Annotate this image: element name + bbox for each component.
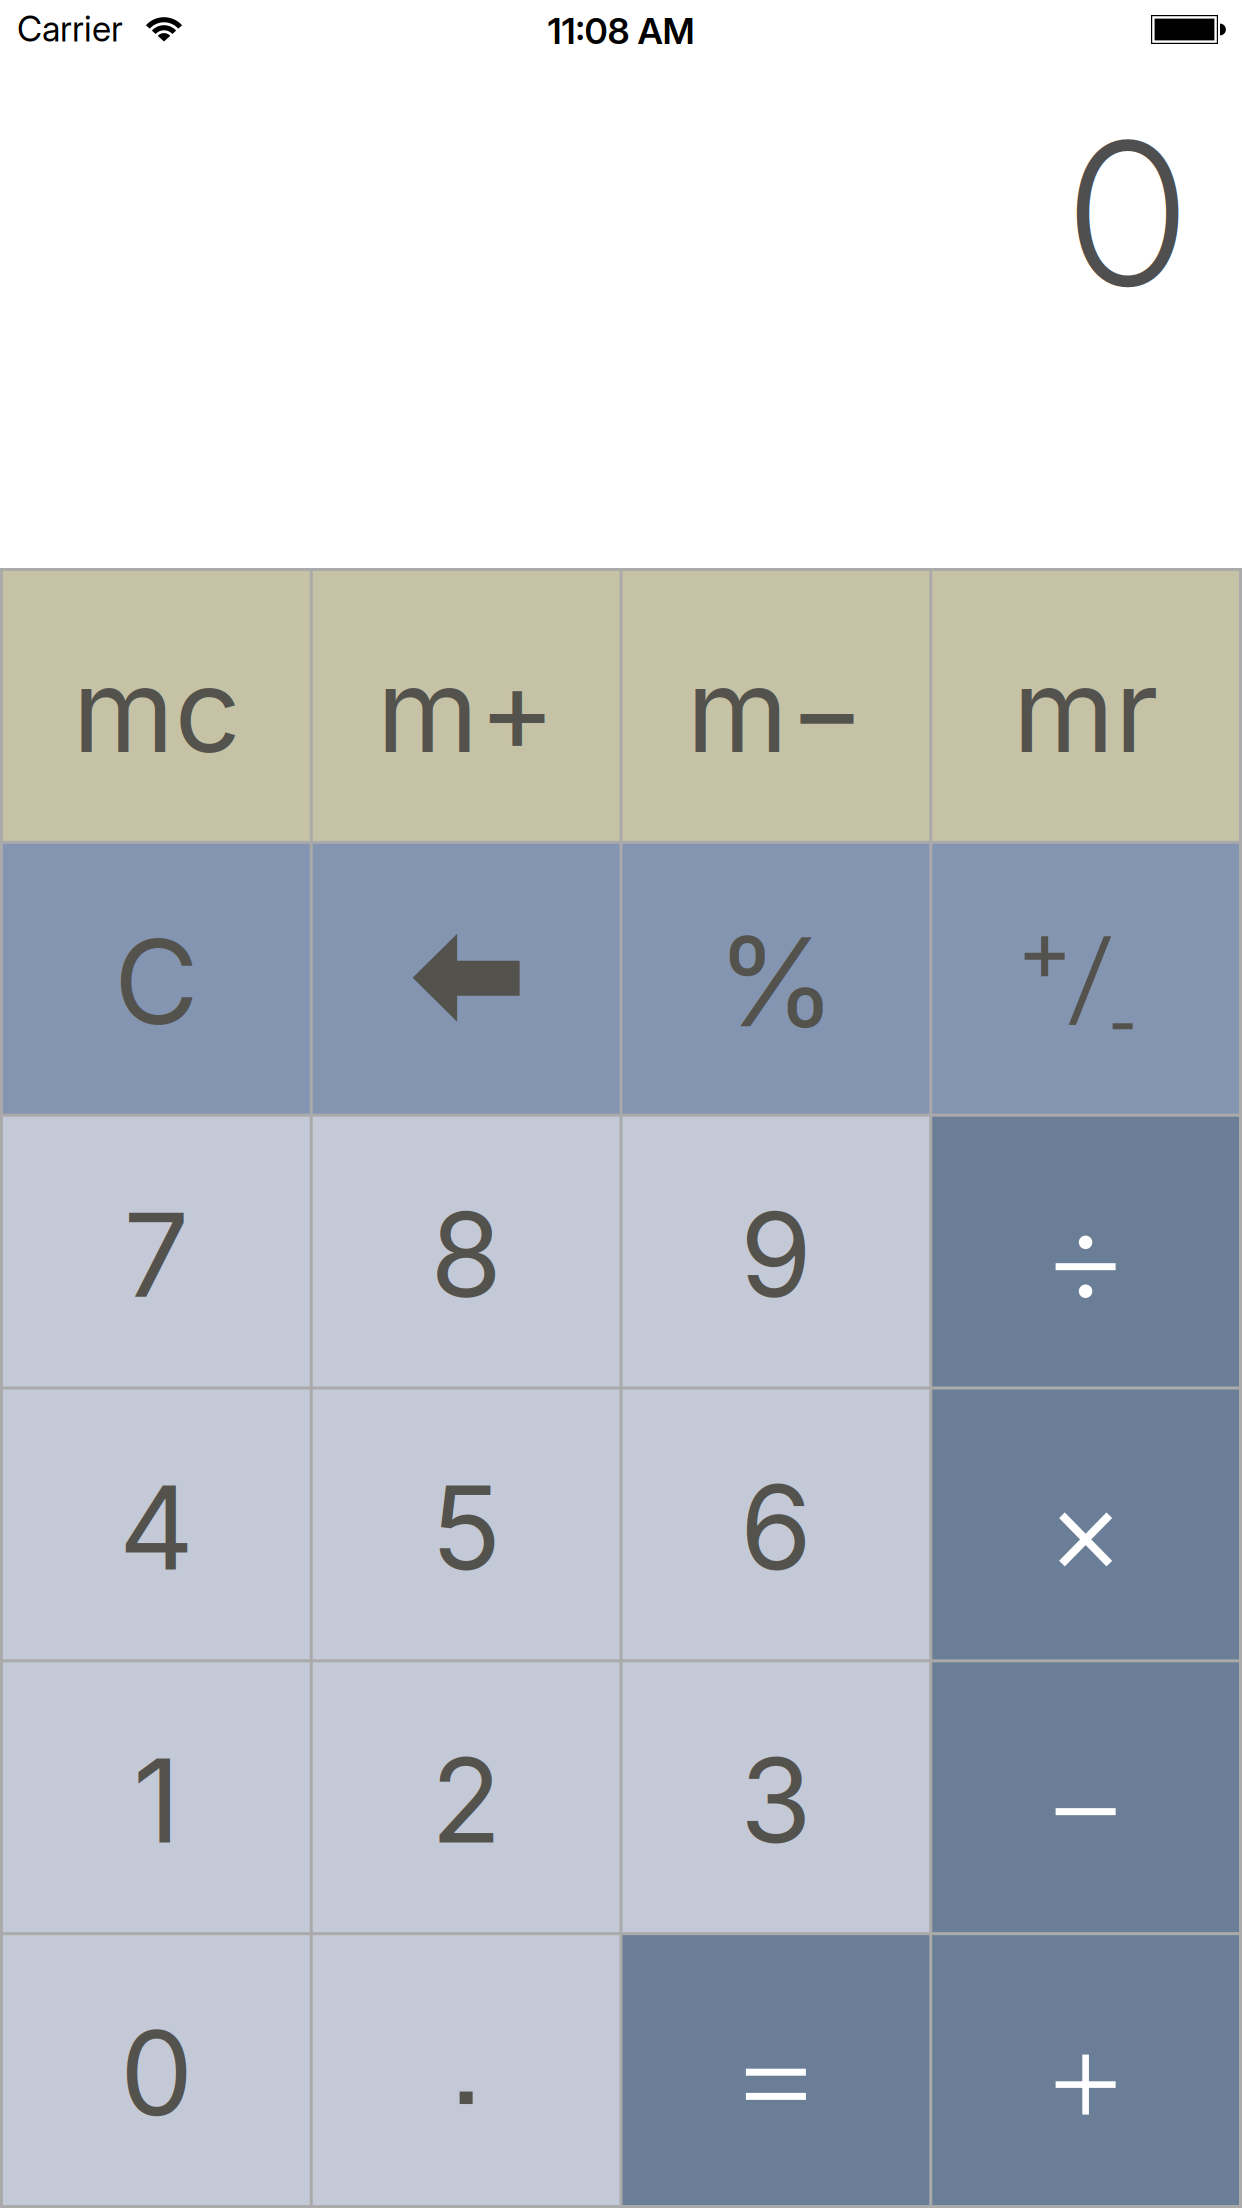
button[interactable]: % [622, 844, 929, 1114]
staticText: 0 [120, 2003, 193, 2143]
staticText: 11:08 AM [547, 9, 694, 53]
button[interactable]: Divide [932, 1117, 1239, 1386]
button[interactable]: 0 [3, 1935, 310, 2205]
staticText: 8 [430, 1184, 502, 1325]
button[interactable]: Plus/Minus [932, 844, 1239, 1114]
button[interactable]: Decimal point [313, 1935, 620, 2205]
button[interactable]: mr [932, 571, 1239, 841]
staticText: mc [72, 640, 240, 780]
staticText: 1 [133, 1730, 180, 1870]
staticText: % [716, 907, 836, 1056]
staticText: Carrier [17, 8, 123, 50]
button[interactable]: Backspace [313, 844, 620, 1114]
staticText: 3 [740, 1730, 812, 1870]
button[interactable]: m+ [313, 571, 620, 841]
button[interactable]: Multiply [932, 1389, 1239, 1659]
button[interactable]: Add [932, 1935, 1239, 2205]
staticText: 6 [740, 1457, 812, 1598]
button[interactable]: 7 [3, 1117, 310, 1386]
staticText: 4 [119, 1457, 194, 1598]
staticText: 7 [123, 1184, 189, 1325]
staticText: 5 [431, 1457, 502, 1598]
button[interactable]: 2 [313, 1662, 620, 1932]
staticText: 0 [1069, 94, 1186, 333]
button[interactable]: 3 [622, 1662, 929, 1932]
button[interactable]: Subtract [932, 1662, 1239, 1932]
button[interactable]: 4 [3, 1389, 310, 1659]
button[interactable]: 5 [313, 1389, 620, 1659]
staticText: 2 [431, 1730, 502, 1870]
button[interactable]: mc [3, 571, 310, 841]
button[interactable]: 1 [3, 1662, 310, 1932]
staticText: m+ [377, 640, 556, 780]
staticText: m− [686, 640, 865, 780]
staticText: mr [1013, 640, 1159, 780]
button[interactable]: 6 [622, 1389, 929, 1659]
staticText: 9 [740, 1184, 812, 1325]
button[interactable]: Equals [622, 1935, 929, 2205]
button[interactable]: 9 [622, 1117, 929, 1386]
button[interactable]: C [3, 844, 310, 1114]
button[interactable]: 8 [313, 1117, 620, 1386]
button[interactable]: m− [622, 571, 929, 841]
staticText: C [114, 912, 199, 1052]
